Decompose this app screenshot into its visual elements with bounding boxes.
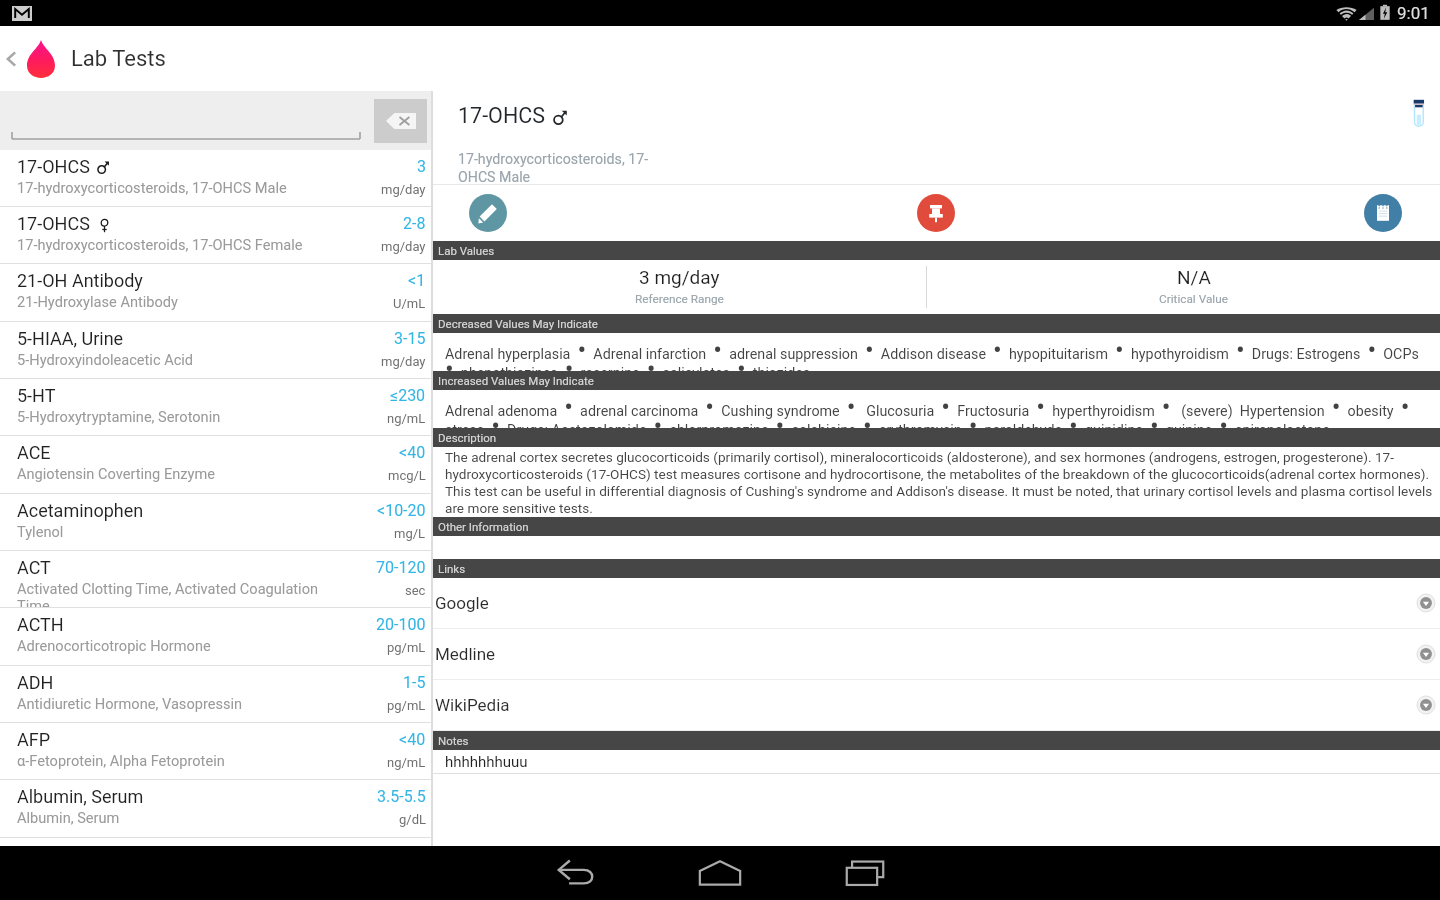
button[interactable] (6, 97, 366, 145)
staticText: Adrenal hyperplasia • Adrenal infarction… (445, 335, 1434, 371)
staticText: Adrenocorticotropic Hormone (17, 637, 211, 654)
staticText: mg/day (381, 354, 426, 369)
button[interactable]: 5-HIAA, Urine (0, 322, 431, 379)
staticText: N/A (1177, 266, 1211, 288)
staticText: pg/mL (387, 640, 426, 655)
staticText: 17-OHCS (458, 103, 545, 128)
staticText: AFP (17, 729, 51, 750)
button[interactable]: Albumin, Serum (0, 780, 431, 838)
staticText: Adrenal adenoma • adrenal carcinoma • Cu… (445, 392, 1434, 428)
button[interactable]: 17-OHCS (0, 207, 431, 264)
button[interactable]: 17-OHCS (0, 150, 431, 207)
staticText: pg/mL (387, 698, 426, 713)
staticText: WikiPedia (435, 695, 510, 715)
staticText: ≤230 (390, 386, 426, 405)
staticText: Notes (438, 734, 469, 747)
staticText: Description (438, 431, 497, 444)
button[interactable]: AFP (0, 723, 431, 780)
staticText: Medline (435, 644, 496, 664)
button[interactable]: Pin (917, 194, 955, 232)
staticText: U/mL (393, 296, 426, 311)
button[interactable]: 3 mg/day (433, 260, 926, 314)
staticText: Albumin, Serum (17, 809, 120, 826)
button[interactable]: ACTH (0, 608, 431, 666)
staticText: 2-8 (403, 214, 426, 233)
button[interactable]: ADH (0, 666, 431, 723)
staticText: 1-5 (403, 673, 426, 692)
staticText: 3.5-5.5 (377, 787, 426, 806)
staticText: Decreased Values May Indicate (438, 317, 598, 330)
staticText: 17-hydroxycorticosteroids, 17-OHCS Femal… (17, 236, 303, 253)
staticText: Lab Values (438, 244, 495, 257)
button[interactable]: N/A (927, 260, 1440, 314)
staticText: Activated Clotting Time, Activated Coagu… (17, 580, 326, 607)
staticText: g/dL (399, 812, 426, 827)
staticText: 3-15 (394, 329, 426, 348)
button[interactable]: Google (433, 578, 1440, 629)
staticText: <40 (399, 443, 426, 462)
staticText: 5-HIAA, Urine (17, 328, 124, 349)
staticText: Angiotensin Coverting Enzyme (17, 465, 215, 482)
staticText: <1 (408, 271, 426, 290)
staticText: <10-20 (377, 501, 426, 520)
staticText: 9:01 (1397, 3, 1430, 23)
staticText: 17-OHCS (17, 156, 90, 177)
staticText: Increased Values May Indicate (438, 374, 594, 387)
staticText: Critical Value (1159, 292, 1228, 306)
button[interactable]: 5-HT (0, 379, 431, 436)
staticText: ng/mL (387, 411, 426, 426)
button[interactable]: Back (504, 846, 648, 900)
staticText: Other Information (438, 520, 529, 533)
staticText: α-Fetoprotein, Alpha Fetoprotein (17, 752, 225, 769)
staticText: The adrenal cortex secretes glucocortico… (445, 449, 1434, 516)
staticText: 70-120 (376, 558, 426, 577)
button[interactable]: Home (648, 846, 792, 900)
button[interactable]: Notes (1364, 194, 1402, 232)
button[interactable]: ACE (0, 436, 431, 494)
button[interactable]: Clear (374, 99, 427, 143)
staticText: 21-OH Antibody (17, 270, 143, 291)
button[interactable]: Acetaminophen (0, 494, 431, 551)
staticText: hhhhhhhuuu (445, 753, 528, 771)
staticText: sec (405, 583, 426, 598)
staticText: 17-OHCS (17, 213, 90, 234)
button[interactable]: Edit (469, 194, 507, 232)
staticText: <40 (399, 730, 426, 749)
staticText: 3 mg/day (639, 266, 720, 288)
staticText: mg/day (381, 239, 426, 254)
button[interactable]: Medline (433, 629, 1440, 680)
staticText: Acetaminophen (17, 500, 144, 521)
staticText: mg/day (381, 182, 426, 197)
staticText: mg/L (394, 526, 426, 541)
button[interactable]: Back (0, 26, 22, 91)
button[interactable]: ACT (0, 551, 431, 608)
staticText: Google (435, 593, 489, 613)
button[interactable]: WikiPedia (433, 680, 1440, 731)
staticText: 3 (417, 157, 426, 176)
button[interactable]: 21-OH Antibody (0, 264, 431, 322)
staticText: Tylenol (17, 523, 64, 540)
staticText: Links (438, 562, 466, 575)
staticText: 5-Hydroxytryptamine, Serotonin (17, 408, 221, 425)
staticText: 5-Hydroxyindoleacetic Acid (17, 351, 194, 368)
staticText: mcg/L (388, 468, 426, 483)
staticText: 5-HT (17, 385, 56, 406)
staticText: 21-Hydroxylase Antibody (17, 293, 178, 310)
button[interactable]: Recents (793, 846, 937, 900)
staticText: 20-100 (376, 615, 426, 634)
staticText: 17-hydroxycorticosteroids, 17-OHCS Male (17, 179, 287, 196)
staticText: Reference Range (635, 292, 724, 306)
staticText: ng/mL (387, 755, 426, 770)
staticText: Antidiuretic Hormone, Vasopressin (17, 695, 243, 712)
staticText: Albumin, Serum (17, 786, 144, 807)
staticText: ADH (17, 672, 54, 693)
staticText: ACE (17, 442, 51, 463)
staticText: Lab Tests (71, 46, 166, 72)
staticText: ACT (17, 557, 51, 578)
staticText: ACTH (17, 614, 64, 635)
staticText: 17-hydroxycorticosteroids, 17- OHCS Male (458, 151, 649, 184)
